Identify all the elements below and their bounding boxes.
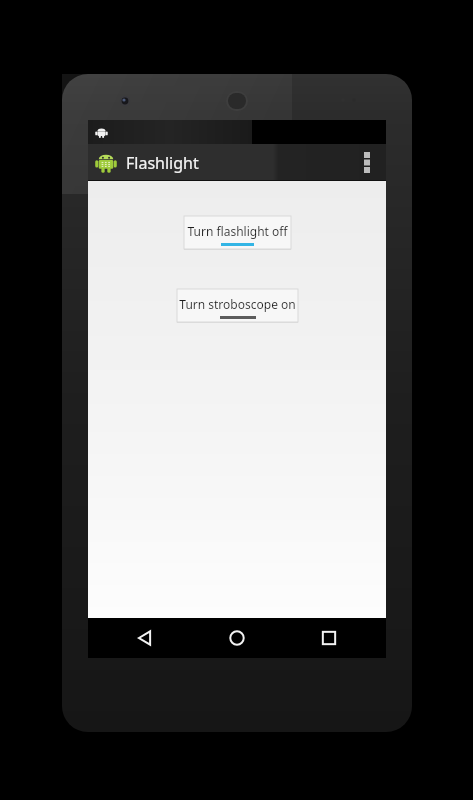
staticText: Turn flashlight off	[187, 223, 288, 239]
button[interactable]: Recent apps	[294, 618, 364, 658]
staticText: Flashlight	[126, 152, 199, 174]
staticText: Turn stroboscope on	[179, 296, 296, 312]
button[interactable]: Back	[110, 618, 180, 658]
button[interactable]: More options	[354, 144, 380, 181]
button[interactable]: Turn flashlight off	[184, 216, 291, 249]
button[interactable]: Home	[202, 618, 272, 658]
button[interactable]: Turn stroboscope on	[177, 289, 298, 322]
